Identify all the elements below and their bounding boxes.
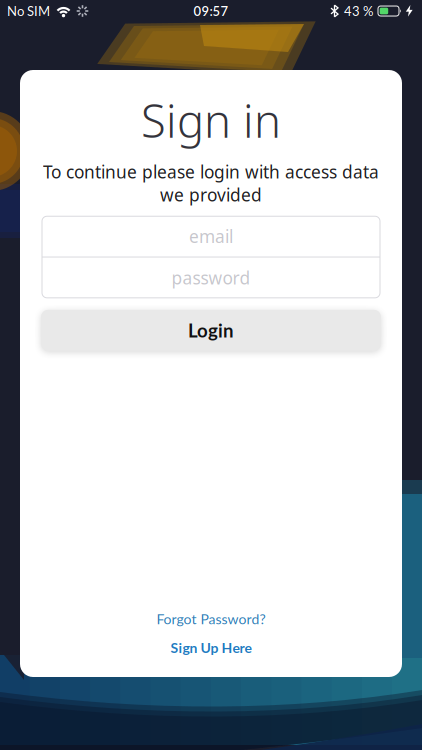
staticText: Sign Up Here [170, 639, 251, 656]
staticText: password [171, 266, 250, 289]
staticText: To continue please login with access dat… [43, 160, 379, 183]
staticText: 09:57 [193, 3, 228, 19]
staticText: No SIM [7, 3, 50, 19]
button[interactable]: Sign Up Here [170, 639, 251, 656]
textField[interactable]: password [42, 263, 380, 293]
staticText: Sign in [141, 90, 281, 150]
staticText: we provided [160, 183, 262, 206]
textField[interactable]: email [42, 221, 380, 251]
staticText: Forgot Password? [156, 610, 265, 627]
button[interactable]: Forgot Password? [156, 610, 265, 627]
staticText: email [189, 225, 233, 248]
staticText: Login [188, 319, 234, 341]
button[interactable]: Login [41, 310, 381, 351]
staticText: 43 % [344, 3, 373, 19]
